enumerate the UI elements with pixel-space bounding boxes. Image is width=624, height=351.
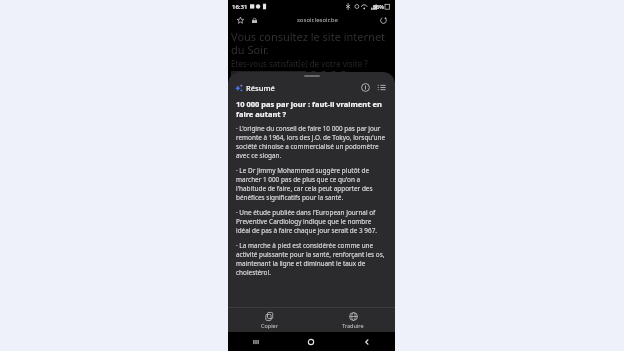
staticText: · L'origine du conseil de faire 10 000 p…	[236, 124, 387, 160]
button[interactable]: Traduire	[311, 308, 395, 332]
staticText: Copier	[261, 322, 278, 329]
staticText: · La marche à pied est considérée comme …	[236, 241, 387, 277]
button[interactable]: Copier	[228, 308, 311, 332]
button[interactable]: Reload page	[377, 14, 389, 26]
staticText: 10 000 pas par jour : faut-il vraiment e…	[236, 99, 387, 119]
staticText: · Le Dr Jimmy Mohammed suggère plutôt de…	[236, 166, 387, 202]
button[interactable]: Back	[339, 332, 395, 351]
staticText: 56%	[373, 3, 384, 10]
button[interactable]: Résumé	[235, 83, 275, 93]
staticText: sosoir.lesoir.be	[297, 16, 338, 24]
staticText: · Une étude publiée dans l'European Jour…	[236, 208, 387, 235]
button[interactable]: Summary format	[375, 81, 388, 94]
button[interactable]: Home	[283, 332, 339, 351]
staticText: Traduire	[342, 322, 364, 329]
button[interactable]: Recent apps	[228, 332, 283, 351]
button[interactable]: Site information	[249, 15, 259, 25]
button[interactable]: Bookmark	[234, 14, 246, 26]
staticText: Vous consultez le site internet du Soir.	[231, 29, 392, 57]
staticText: Etes-vous satisfait(e) de votre visite ?	[231, 58, 368, 69]
staticText: Résumé	[246, 83, 275, 93]
button[interactable]: Information	[359, 81, 372, 94]
staticText: 16:31	[232, 3, 248, 11]
